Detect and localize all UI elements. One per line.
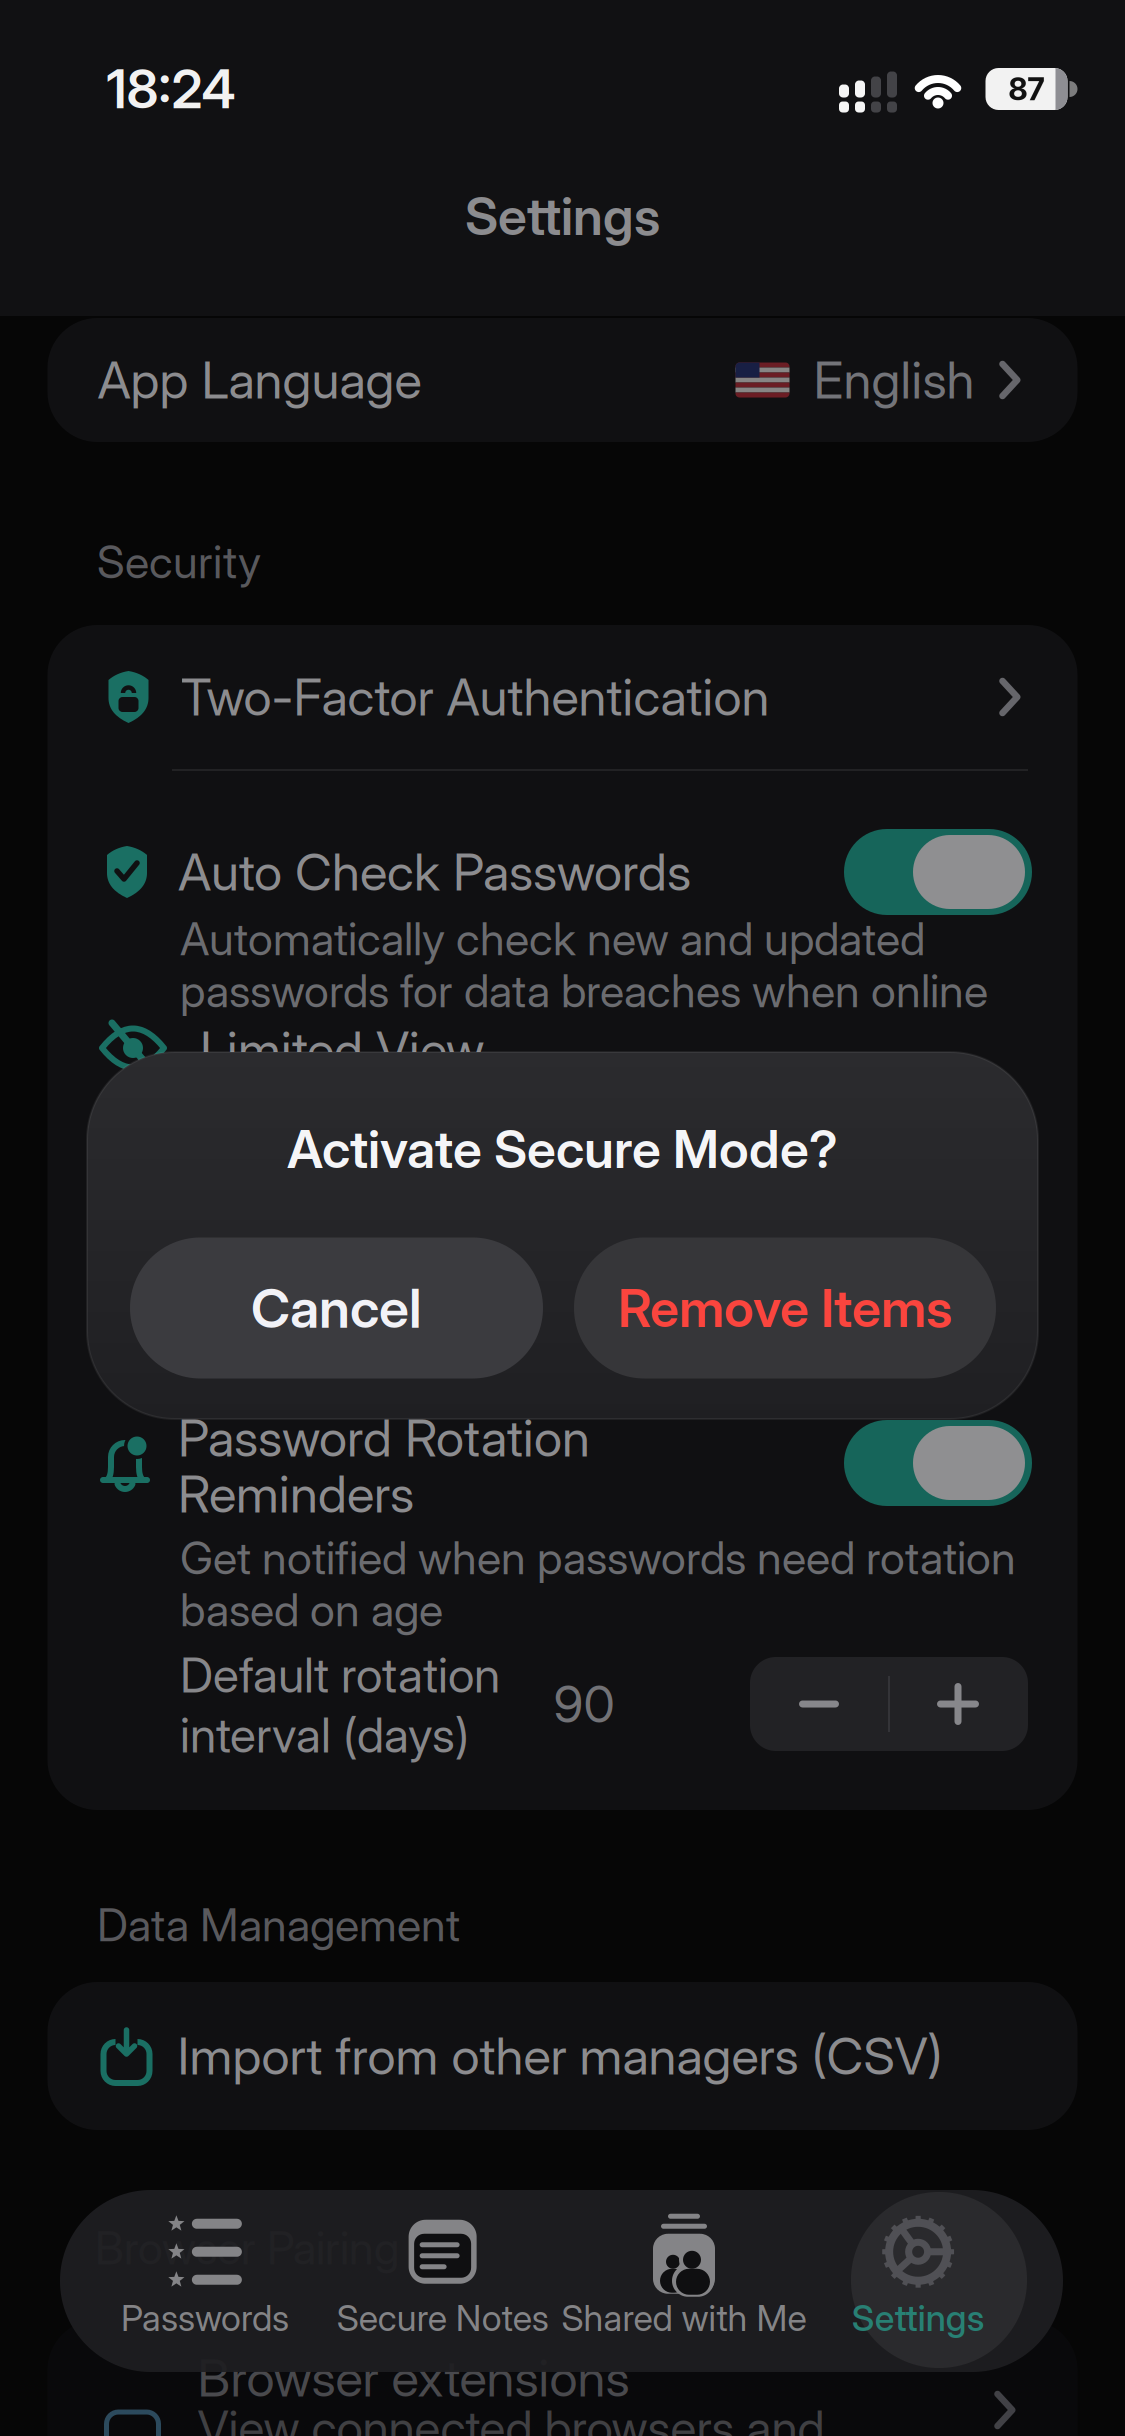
staticText: Automatically check new and updated bbox=[180, 912, 925, 966]
staticText: Password Rotation bbox=[178, 1408, 590, 1468]
staticText: App Language bbox=[97, 350, 421, 410]
button[interactable]: Decrease rotation interval bbox=[750, 1657, 888, 1751]
staticText: Shared with Me bbox=[561, 2297, 806, 2339]
staticText: 90 bbox=[553, 1674, 614, 1734]
button[interactable]: Passwords bbox=[86, 2219, 324, 2339]
staticText: English bbox=[813, 350, 974, 410]
staticText: 18:24 bbox=[106, 58, 235, 120]
button[interactable]: Password Rotation Reminders bbox=[844, 1420, 1032, 1506]
staticText: Settings bbox=[852, 2297, 985, 2339]
button[interactable]: Two-Factor Authentication bbox=[47, 624, 1077, 769]
staticText: 87 bbox=[1008, 71, 1044, 107]
staticText: Data Management bbox=[97, 1898, 460, 1952]
staticText: Cancel bbox=[251, 1276, 422, 1340]
staticText: Limited View bbox=[200, 1020, 484, 1080]
button[interactable]: Cancel bbox=[130, 1237, 543, 1378]
button[interactable]: Increase rotation interval bbox=[889, 1657, 1027, 1751]
staticText: Get notified when passwords need rotatio… bbox=[180, 1531, 1016, 1585]
staticText: Default rotation bbox=[180, 1647, 500, 1703]
button[interactable]: Remove Items bbox=[574, 1237, 996, 1378]
button[interactable]: Browser extensions bbox=[47, 2320, 1077, 2436]
staticText: based on age bbox=[180, 1583, 443, 1637]
button[interactable]: Secure Notes bbox=[324, 2219, 562, 2339]
staticText: Passwords bbox=[121, 2297, 289, 2339]
staticText: Browser extensions bbox=[197, 2348, 629, 2408]
staticText: Two-Factor Authentication bbox=[180, 667, 769, 727]
staticText: Security bbox=[97, 535, 261, 589]
staticText: Reminders bbox=[178, 1464, 414, 1524]
button[interactable]: Shared with Me bbox=[561, 2219, 799, 2339]
staticText: Auto Check Passwords bbox=[178, 842, 691, 902]
staticText: interval (days) bbox=[180, 1707, 469, 1763]
staticText: Import from other managers (CSV) bbox=[177, 2026, 942, 2086]
staticText: Activate Secure Mode? bbox=[287, 1118, 838, 1180]
button[interactable]: Settings bbox=[799, 2219, 1037, 2339]
staticText: Settings bbox=[465, 185, 660, 247]
staticText: passwords for data breaches when online bbox=[180, 964, 988, 1018]
button[interactable]: Import from other managers (CSV) bbox=[47, 1982, 1077, 2130]
staticText: Browser Pairing bbox=[95, 2221, 399, 2275]
staticText: Remove Items bbox=[618, 1277, 952, 1339]
staticText: Secure Notes bbox=[337, 2297, 549, 2339]
button[interactable]: App Language bbox=[47, 318, 1077, 442]
button[interactable]: Auto Check Passwords bbox=[844, 829, 1032, 915]
staticText: View connected browsers and bbox=[197, 2400, 824, 2436]
